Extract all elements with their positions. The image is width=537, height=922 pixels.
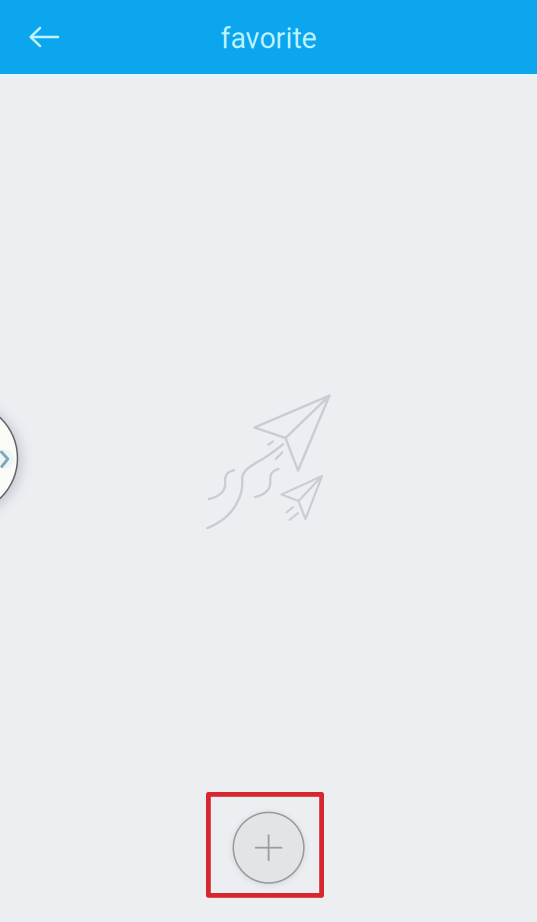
button[interactable]: Add xyxy=(233,812,304,883)
staticText: favorite xyxy=(220,22,316,55)
button[interactable]: Back xyxy=(0,0,62,74)
button[interactable]: Open drawer xyxy=(0,402,17,513)
